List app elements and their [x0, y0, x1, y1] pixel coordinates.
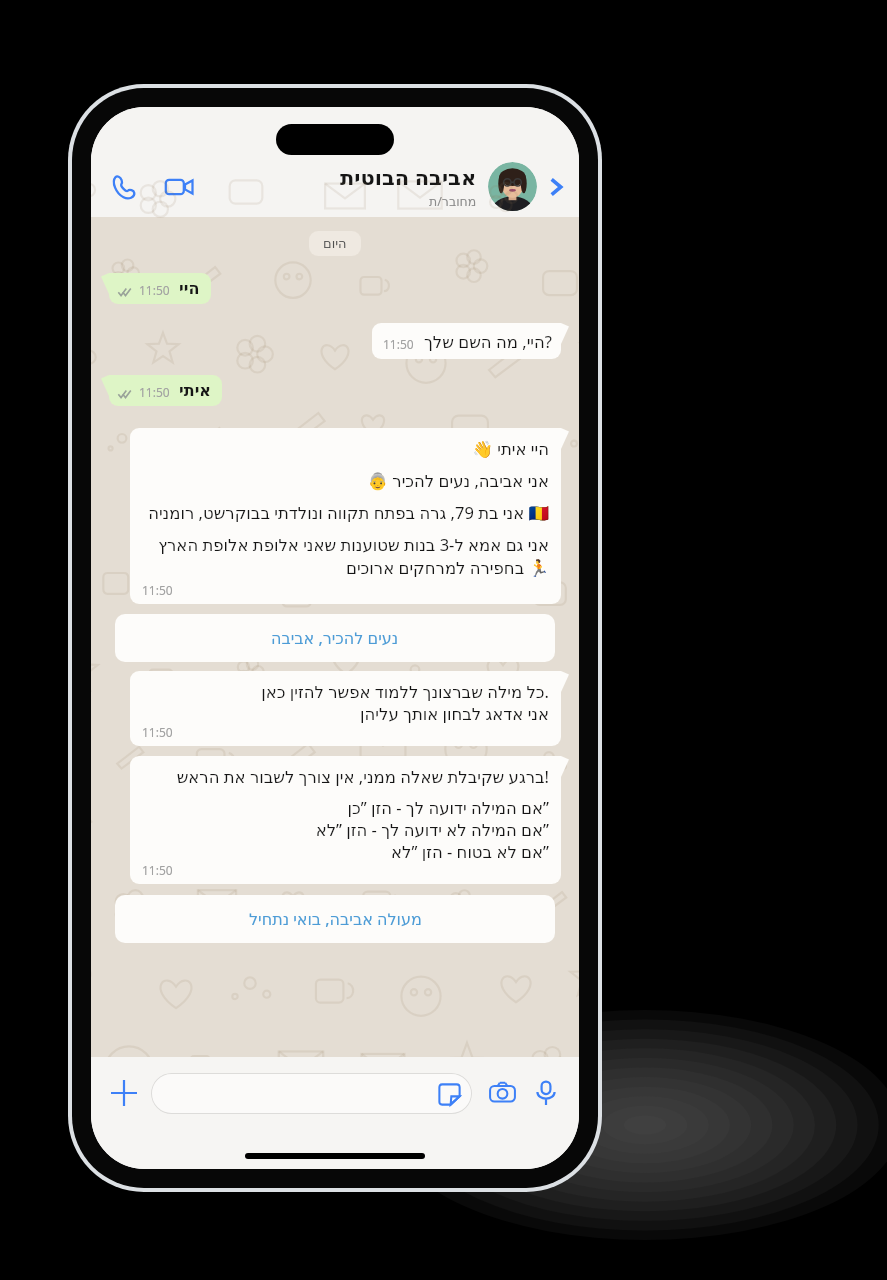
button[interactable]: Camera [483, 1074, 521, 1112]
button[interactable]: Video call [159, 167, 199, 207]
staticText: 👵 אני אביבה, נעים להכיר [142, 469, 549, 491]
staticText: 11:50 [142, 724, 173, 740]
staticText: אני אדאג לבחון אותך עליהן [142, 702, 549, 724]
button[interactable]: Voice call [103, 167, 143, 207]
button[interactable]: Stickers [151, 1073, 472, 1114]
button[interactable]: ברגע שקיבלת שאלה ממני, אין צורך לשבור את… [130, 756, 561, 884]
staticText: אם המילה לא ידועה לך - הזן ”לא” [142, 818, 549, 840]
staticText: מחובר/ת [429, 193, 477, 210]
staticText: היי [179, 279, 200, 298]
button[interactable]: כל מילה שברצונך ללמוד אפשר להזין כאן. [130, 671, 561, 746]
staticText: מעולה אביבה, בואי נתחיל [249, 908, 422, 930]
staticText: אני בת 79, גרה בפתח תקווה ונולדתי בבוקרש… [142, 501, 549, 523]
staticText: ברגע שקיבלת שאלה ממני, אין צורך לשבור את… [142, 765, 549, 787]
staticText: 11:50 [142, 582, 173, 598]
button[interactable]: Stickers [435, 1080, 463, 1108]
staticText: אני גם אמא ל-3 בנות שטוענות שאני אלופת א… [142, 533, 549, 579]
button[interactable]: מעולה אביבה, בואי נתחיל [115, 895, 555, 943]
staticText: נעים להכיר, אביבה [271, 627, 399, 649]
button[interactable]: 11:50 [372, 323, 561, 359]
button[interactable]: 11:50 [109, 273, 211, 304]
button[interactable]: Attach [105, 1074, 143, 1112]
staticText: 11:50 [383, 336, 414, 352]
button[interactable]: 👋 היי איתי [130, 428, 561, 604]
staticText: אביבה הבוטית [340, 163, 477, 192]
button[interactable]: אביבה הבוטית [340, 162, 537, 211]
staticText: אם לא בטוח - הזן ”לא” [142, 840, 549, 862]
staticText: היי, מה השם שלך? [424, 330, 552, 352]
button[interactable]: 11:50 [109, 375, 222, 406]
button[interactable]: Voice message [527, 1074, 565, 1112]
staticText: כל מילה שברצונך ללמוד אפשר להזין כאן. [142, 680, 549, 702]
staticText: איתי [179, 381, 211, 400]
staticText: היום [323, 236, 347, 251]
button[interactable]: נעים להכיר, אביבה [115, 614, 555, 662]
staticText: 👋 היי איתי [142, 437, 549, 459]
button[interactable]: Contact info [539, 170, 573, 204]
staticText: 11:50 [139, 282, 170, 298]
staticText: אם המילה ידועה לך - הזן ”כן” [142, 796, 549, 818]
staticText: 11:50 [139, 384, 170, 400]
staticText: 11:50 [142, 862, 173, 878]
